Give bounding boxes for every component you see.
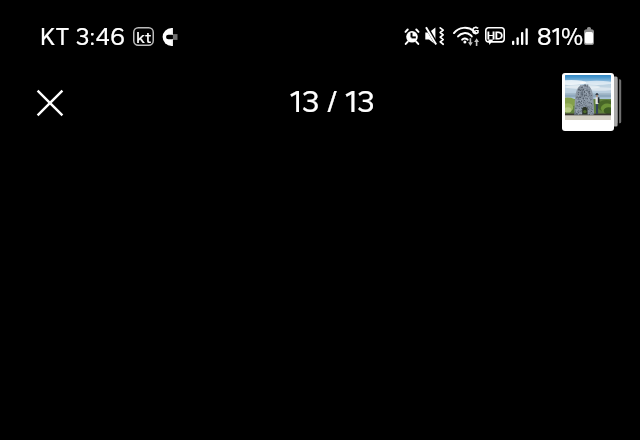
staticText: 13 / 13	[289, 83, 375, 120]
staticText: HD	[487, 29, 503, 42]
button[interactable]: Close	[26, 79, 74, 127]
staticText: kt	[136, 27, 152, 46]
staticText: KT 3:46	[40, 22, 126, 51]
staticText: 81%	[537, 22, 584, 51]
button[interactable]: Selected photos	[562, 73, 621, 131]
staticText: G	[472, 25, 479, 36]
